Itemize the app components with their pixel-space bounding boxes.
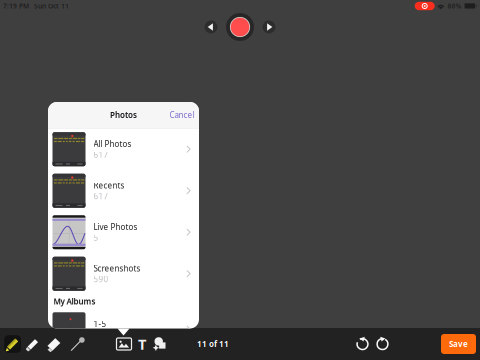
staticText: 617 xyxy=(93,191,108,201)
button[interactable]: Pencil xyxy=(4,328,22,360)
button[interactable]: Undo xyxy=(353,328,371,360)
button[interactable]: Recents xyxy=(48,170,199,211)
staticText: Screenshots xyxy=(93,263,140,274)
staticText: 11 of 11 xyxy=(197,339,229,349)
button[interactable]: Previous page xyxy=(204,20,217,33)
button[interactable]: Insert signature xyxy=(151,328,167,360)
staticText: 590 xyxy=(93,274,108,284)
staticText: All Photos xyxy=(93,139,131,149)
staticText: Cancel xyxy=(169,110,194,120)
button[interactable]: 1-5 xyxy=(48,308,199,350)
button[interactable]: Save xyxy=(441,334,476,354)
button[interactable]: Redo xyxy=(373,328,391,360)
button[interactable]: Insert text xyxy=(134,328,149,360)
staticText: 7:19 PM xyxy=(3,2,29,10)
button[interactable]: Screenshots xyxy=(48,253,199,294)
staticText: Save xyxy=(449,339,468,349)
button[interactable]: Live Photos xyxy=(48,211,199,253)
staticText: Photos xyxy=(110,110,137,120)
button[interactable]: All Photos xyxy=(48,128,199,170)
staticText: 5 xyxy=(93,232,98,243)
button[interactable]: Record xyxy=(226,13,254,41)
staticText: T xyxy=(138,334,146,354)
staticText: Sun Oct 11 xyxy=(34,2,69,10)
button[interactable]: Insert photo xyxy=(115,328,133,360)
staticText: 1-5 xyxy=(93,319,106,329)
staticText: 86% xyxy=(448,2,462,10)
staticText: My Albums xyxy=(53,296,95,307)
button[interactable]: Lasso xyxy=(68,328,86,360)
button[interactable]: Next page xyxy=(262,20,275,33)
staticText: 617 xyxy=(93,149,108,160)
button[interactable]: Cancel xyxy=(165,102,199,128)
staticText: Live Photos xyxy=(93,222,137,232)
button[interactable]: Highlighter xyxy=(23,328,41,360)
button[interactable]: Eraser xyxy=(45,328,63,360)
staticText: Recents xyxy=(93,180,124,191)
